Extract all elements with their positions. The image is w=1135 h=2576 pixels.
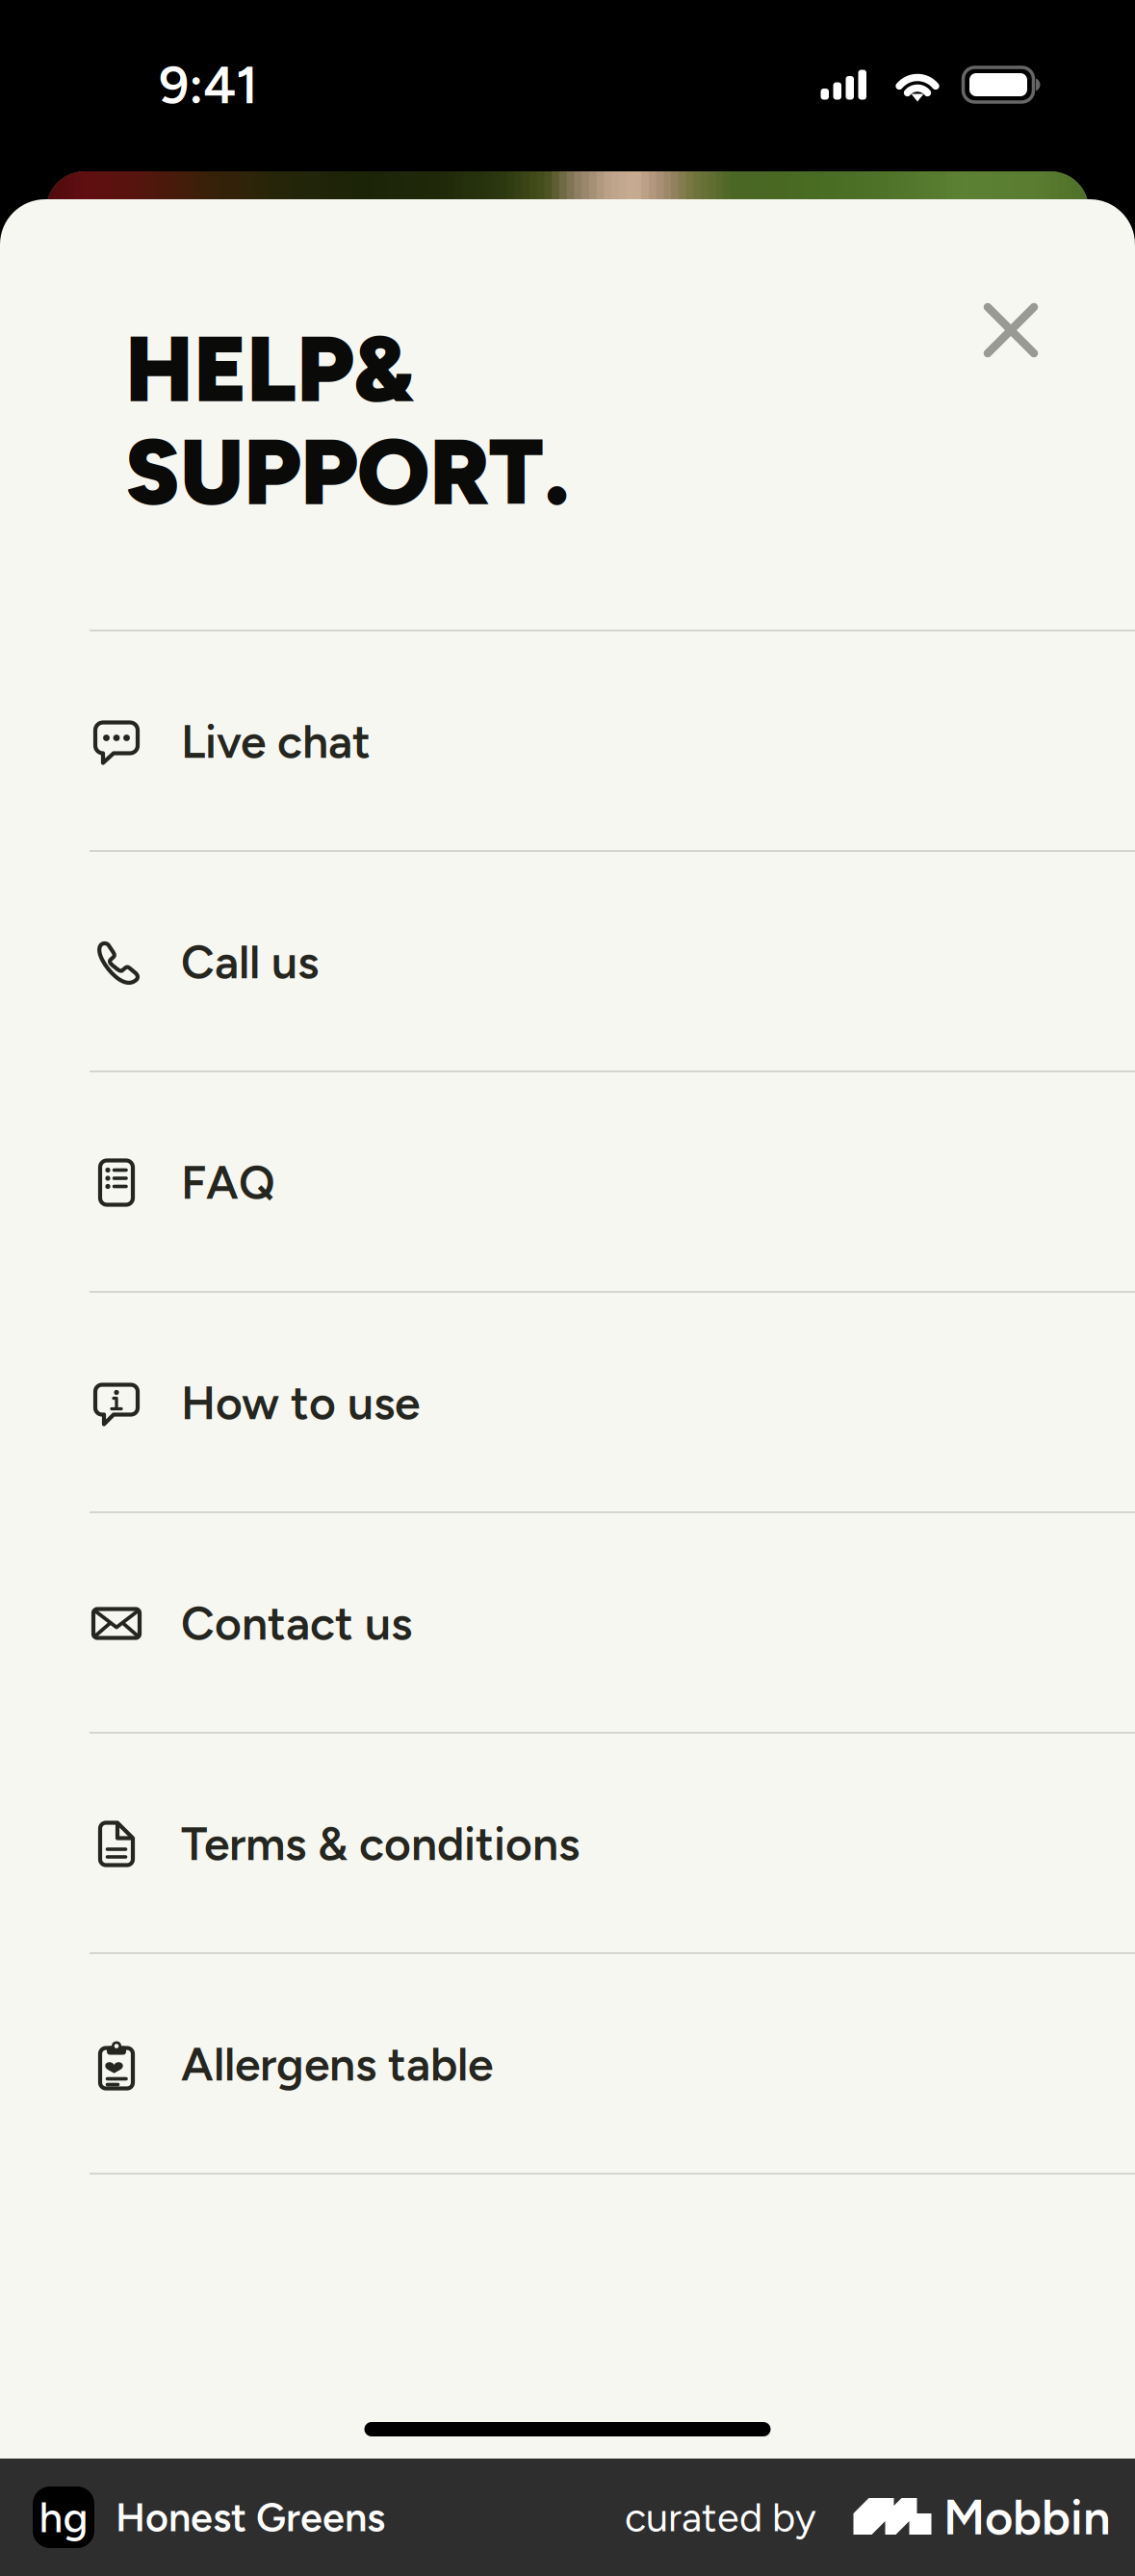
button[interactable]: FAQ (0, 1072, 1135, 1293)
staticText: Honest Greens (116, 2493, 385, 2541)
staticText: SUPPORT. (125, 417, 570, 527)
staticText: HELP& (125, 314, 413, 424)
button[interactable]: Live chat (0, 631, 1135, 852)
staticText: Live chat (181, 714, 371, 769)
button[interactable]: Allergens table (0, 1954, 1135, 2175)
button[interactable]: Call us (0, 852, 1135, 1072)
staticText: Contact us (181, 1596, 412, 1651)
staticText: Mobbin (943, 2488, 1111, 2547)
button[interactable]: How to use (0, 1293, 1135, 1513)
staticText: Allergens table (181, 2037, 493, 2092)
staticText: curated by (625, 2493, 816, 2541)
button[interactable]: Terms & conditions (0, 1734, 1135, 1954)
staticText: 9:41 (159, 53, 258, 116)
button[interactable]: Close (961, 280, 1061, 380)
staticText: How to use (181, 1375, 420, 1431)
staticText: FAQ (181, 1155, 275, 1210)
staticText: Terms & conditions (181, 1816, 580, 1872)
staticText: hg (39, 2492, 88, 2543)
button[interactable]: Contact us (0, 1513, 1135, 1734)
staticText: Call us (181, 934, 319, 990)
